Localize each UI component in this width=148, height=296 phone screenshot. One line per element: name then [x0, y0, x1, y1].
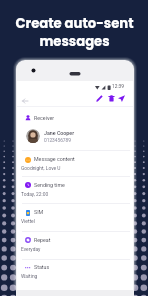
button[interactable]	[22, 178, 130, 202]
staticText: Message content	[34, 156, 75, 162]
staticText: 12:39	[112, 84, 124, 90]
button[interactable]: Jane Cooper	[26, 129, 106, 145]
button[interactable]: Send	[116, 93, 126, 103]
staticText: messages	[39, 32, 110, 50]
staticText: Waiting	[21, 273, 38, 279]
staticText: Today, 22:00	[21, 191, 49, 197]
staticText: Jane Cooper	[44, 130, 75, 136]
staticText: 0123456789	[44, 138, 71, 144]
staticText: Viettel	[21, 218, 35, 224]
staticText: Goodnight, Love U	[21, 165, 61, 171]
button[interactable]	[22, 153, 130, 177]
staticText: Repeat	[34, 237, 51, 243]
button[interactable]: Back	[19, 95, 31, 107]
staticText: SIM	[34, 209, 44, 215]
button[interactable]: Delete	[106, 93, 116, 103]
button[interactable]: Edit	[94, 93, 104, 103]
button[interactable]	[22, 233, 130, 257]
staticText: Everyday	[21, 246, 41, 252]
staticText: Sending time	[34, 182, 65, 188]
button[interactable]	[22, 206, 130, 230]
staticText: Status	[34, 264, 50, 270]
staticText: Create auto-sent	[15, 14, 134, 32]
button[interactable]	[22, 261, 130, 285]
staticText: Receiver	[34, 115, 55, 121]
